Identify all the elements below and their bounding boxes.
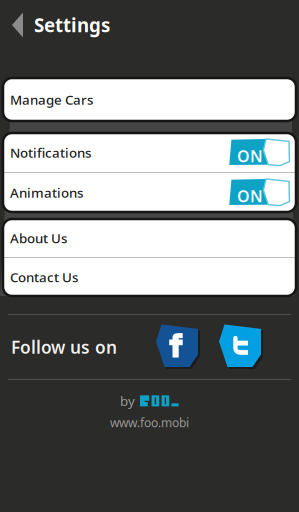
button[interactable]: Notifications [3,133,296,172]
button[interactable]: Back [0,0,34,50]
staticText: Settings [34,13,110,37]
staticText: ON [237,185,263,207]
button[interactable]: Facebook [156,324,200,369]
staticText: Contact Us [10,268,78,286]
button[interactable]: Animations [3,173,296,212]
button[interactable]: Manage Cars [3,78,296,121]
staticText: Notifications [10,144,91,161]
button[interactable]: Twitter [219,324,263,369]
staticText: Manage Cars [10,91,93,108]
staticText: Follow us on [11,335,117,358]
button[interactable]: Contact Us [3,258,296,296]
button[interactable]: About Us [3,219,296,257]
staticText: www.foo.mobi [110,415,189,431]
staticText: About Us [10,229,67,247]
staticText: Animations [10,184,83,201]
staticText: ON [237,145,263,167]
staticText: by [120,392,135,410]
